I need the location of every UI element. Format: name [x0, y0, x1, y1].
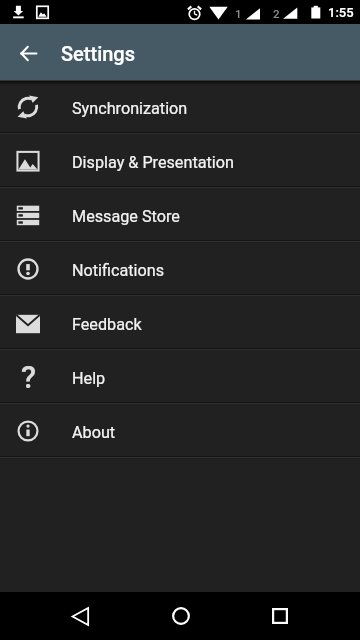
staticText: Message Store [72, 207, 180, 226]
button[interactable]: About [0, 404, 360, 458]
button[interactable]: Synchronization [0, 80, 360, 134]
button[interactable]: Back [44, 592, 117, 640]
staticText: ? [21, 359, 37, 395]
button[interactable]: Navigate up [0, 24, 56, 80]
staticText: Feedback [72, 315, 142, 334]
staticText: Settings [61, 42, 136, 65]
staticText: Display & Presentation [72, 153, 234, 172]
staticText: 2 [273, 7, 280, 20]
staticText: 1:55 [328, 5, 354, 20]
staticText: 1 [235, 7, 242, 20]
button[interactable]: ? [0, 350, 360, 404]
staticText: Notifications [72, 261, 165, 280]
staticText: Help [72, 369, 106, 388]
staticText: Synchronization [72, 99, 188, 118]
button[interactable]: Feedback [0, 296, 360, 350]
button[interactable]: Home [144, 592, 217, 640]
button[interactable]: Display & Presentation [0, 134, 360, 188]
button[interactable]: Notifications [0, 242, 360, 296]
button[interactable]: Recent apps [243, 592, 316, 640]
staticText: About [72, 423, 116, 442]
button[interactable]: Message Store [0, 188, 360, 242]
